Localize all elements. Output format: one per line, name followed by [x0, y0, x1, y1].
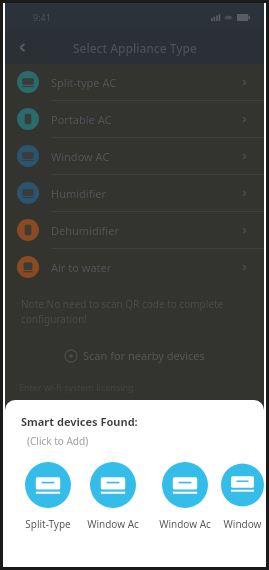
- button[interactable]: Window Ac: [77, 462, 149, 531]
- button[interactable]: Air to water: [5, 249, 264, 285]
- button[interactable]: Split-Type Ac: [19, 462, 77, 531]
- staticText: Window Ac: [221, 517, 264, 531]
- staticText: 9:41: [33, 11, 51, 23]
- staticText: Enter wi-fi system licensing: [19, 381, 134, 393]
- button[interactable]: Humidifier: [5, 175, 264, 211]
- button[interactable]: Window AC: [5, 138, 264, 174]
- staticText: Portable AC: [51, 112, 241, 127]
- staticText: Split-Type Ac: [19, 517, 77, 531]
- button[interactable]: Dehumidifier: [5, 212, 264, 248]
- staticText: Window Ac: [87, 517, 139, 531]
- staticText: Humidifier: [51, 186, 241, 201]
- button[interactable]: Portable AC: [5, 101, 264, 137]
- staticText: (Click to Add): [27, 434, 89, 448]
- staticText: Air to water: [51, 260, 241, 275]
- staticText: Scan for nearby devices: [83, 348, 205, 363]
- staticText: Split-type AC: [51, 75, 241, 90]
- staticText: Window Ac: [159, 517, 211, 531]
- button[interactable]: Window Ac: [149, 462, 221, 531]
- button[interactable]: Scan for nearby devices: [5, 348, 264, 363]
- staticText: Select Appliance Type: [73, 40, 197, 56]
- staticText: Dehumidifier: [51, 223, 241, 238]
- button[interactable]: Window Ac: [221, 462, 264, 531]
- button[interactable]: Split-type AC: [5, 64, 264, 100]
- staticText: Note:No need to scan QR code to complete…: [21, 297, 248, 326]
- staticText: Window AC: [51, 149, 241, 164]
- button[interactable]: Back: [5, 31, 39, 64]
- staticText: Smart devices Found:: [21, 414, 138, 429]
